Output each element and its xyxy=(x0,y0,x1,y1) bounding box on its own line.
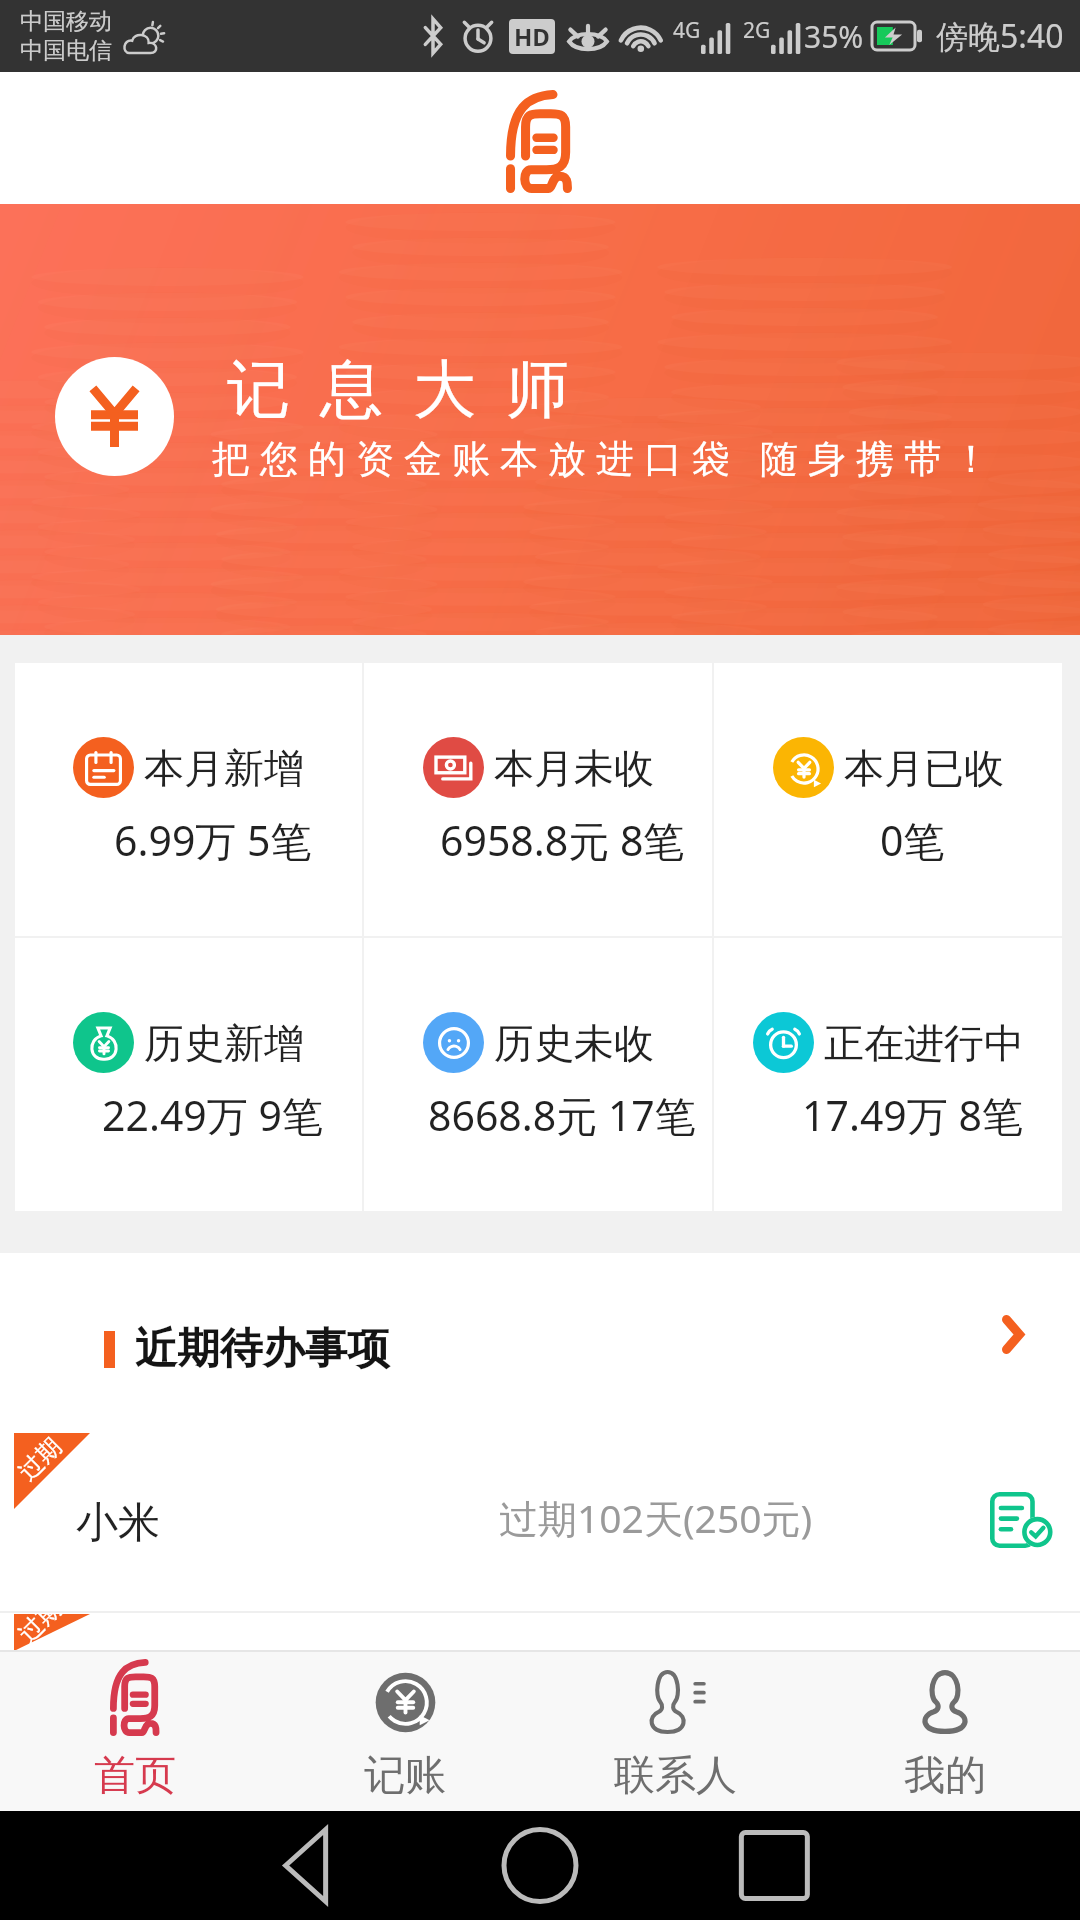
staticText: 中国电信 xyxy=(20,36,112,65)
staticText: 过期 xyxy=(12,1431,68,1487)
staticText: 小米 xyxy=(76,1497,160,1550)
button[interactable]: 正在进行中 xyxy=(714,938,1062,1211)
staticText: 历史新增 xyxy=(144,1018,304,1068)
staticText: 中国移动 xyxy=(20,7,112,36)
staticText: 首页 xyxy=(94,1750,176,1802)
staticText: 22.49万 9笔 xyxy=(102,1087,323,1143)
staticText: 联系人 xyxy=(614,1750,737,1802)
other: 详情 xyxy=(990,1492,1046,1548)
button[interactable]: 记账 xyxy=(270,1652,540,1811)
staticText: 6.99万 5笔 xyxy=(114,812,312,868)
staticText: 傍晚5:40 xyxy=(936,14,1064,58)
button[interactable]: 首页 xyxy=(0,1652,270,1811)
staticText: 本月已收 xyxy=(844,743,1004,793)
button[interactable]: 本月未收 xyxy=(364,663,712,936)
staticText: 正在进行中 xyxy=(824,1018,1024,1068)
other: 查看全部 xyxy=(1002,1315,1024,1354)
button[interactable]: 近期待办事项 xyxy=(0,1253,1080,1433)
staticText: 6958.8元 8笔 xyxy=(440,812,685,868)
staticText: 过期 xyxy=(12,1613,68,1649)
button[interactable]: 历史未收 xyxy=(364,938,712,1211)
button[interactable]: 本月新增 xyxy=(15,663,362,936)
button[interactable]: 过期 xyxy=(0,1433,1080,1611)
staticText: 本月新增 xyxy=(144,743,304,793)
staticText: 过期102天(250元) xyxy=(499,1491,813,1544)
staticText: 8668.8元 17笔 xyxy=(428,1087,696,1143)
button[interactable]: 我的 xyxy=(810,1652,1080,1811)
staticText: 历史未收 xyxy=(494,1018,654,1068)
button[interactable]: 本月已收 xyxy=(714,663,1062,936)
staticText: 本月未收 xyxy=(494,743,654,793)
staticText: 0笔 xyxy=(880,812,945,868)
staticText: 记账 xyxy=(364,1750,446,1802)
staticText: 近期待办事项 xyxy=(135,1322,390,1376)
staticText: 把您的资金账本放进口袋 随身携带！ xyxy=(212,431,1000,483)
button[interactable]: 联系人 xyxy=(540,1652,810,1811)
staticText: 记息大师 xyxy=(212,350,584,429)
staticText: 35% xyxy=(804,16,864,57)
staticText: 17.49万 8笔 xyxy=(802,1087,1023,1143)
button[interactable]: 历史新增 xyxy=(15,938,362,1211)
staticText: HD xyxy=(514,20,550,53)
staticText: 2G xyxy=(743,16,771,45)
staticText: 我的 xyxy=(904,1750,986,1802)
staticText: 4G xyxy=(673,16,701,45)
